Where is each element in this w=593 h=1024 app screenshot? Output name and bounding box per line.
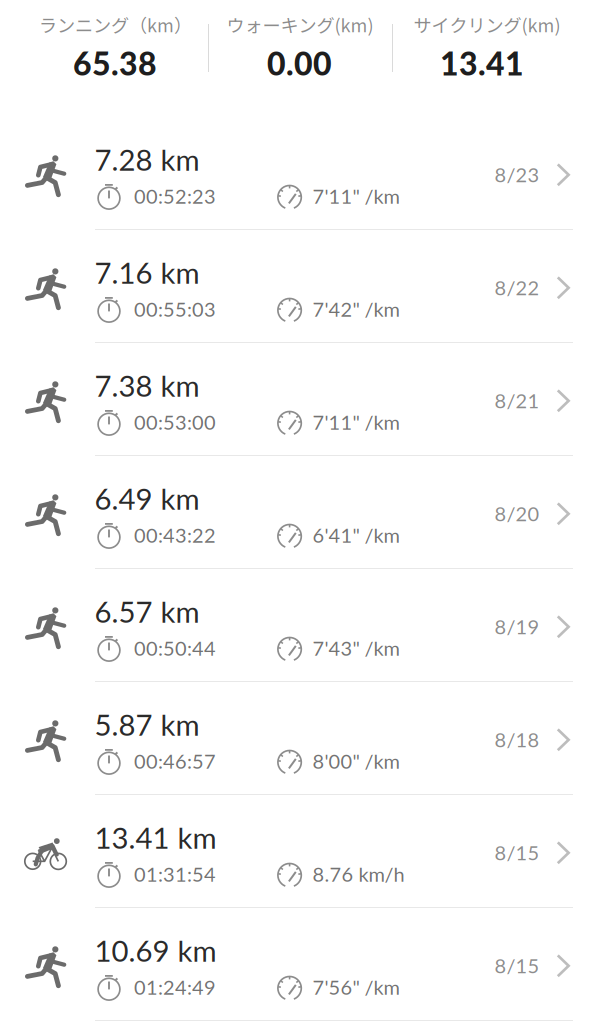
staticText: 7.16 km	[95, 255, 200, 290]
staticText: 8/18	[494, 727, 539, 751]
staticText: 6.57 km	[95, 594, 200, 629]
staticText: 8/15	[494, 953, 539, 977]
staticText: 00:52:23	[134, 184, 216, 208]
button[interactable]: 6.49 km	[0, 456, 593, 569]
staticText: 8'00" /km	[312, 749, 399, 773]
staticText: 8.76 km/h	[312, 862, 404, 886]
button[interactable]: 13.41 km	[0, 795, 593, 908]
staticText: 7'11" /km	[312, 410, 399, 434]
staticText: 6'41" /km	[312, 523, 399, 547]
staticText: 8/20	[494, 501, 539, 525]
button[interactable]: 7.38 km	[0, 343, 593, 456]
staticText: 7'56" /km	[312, 975, 399, 999]
button[interactable]: 7.16 km	[0, 230, 593, 343]
staticText: 8/23	[494, 162, 539, 186]
staticText: 7'43" /km	[312, 636, 399, 660]
button[interactable]: 7.28 km	[0, 117, 593, 230]
button[interactable]: 6.57 km	[0, 569, 593, 682]
staticText: 00:43:22	[134, 523, 216, 547]
staticText: 7'42" /km	[312, 297, 399, 321]
staticText: サイクリング(km)	[413, 11, 560, 37]
staticText: ランニング（km）	[39, 11, 192, 37]
staticText: 10.69 km	[95, 933, 217, 968]
staticText: 8/21	[494, 388, 539, 412]
button[interactable]: 10.69 km	[0, 908, 593, 1021]
staticText: 0.00	[267, 44, 332, 82]
staticText: 65.38	[73, 44, 157, 82]
button[interactable]: 5.87 km	[0, 682, 593, 795]
staticText: 6.49 km	[95, 481, 200, 516]
staticText: 13.41 km	[95, 820, 217, 855]
staticText: 13.41	[440, 44, 524, 82]
staticText: 7.38 km	[95, 368, 200, 403]
staticText: 8/19	[494, 614, 539, 638]
staticText: 00:55:03	[134, 297, 216, 321]
staticText: 01:31:54	[134, 862, 216, 886]
staticText: 00:53:00	[134, 410, 216, 434]
staticText: 8/22	[494, 275, 539, 299]
staticText: 00:50:44	[134, 636, 216, 660]
staticText: 7'11" /km	[312, 184, 399, 208]
staticText: 5.87 km	[95, 707, 200, 742]
staticText: 00:46:57	[134, 749, 216, 773]
staticText: 8/15	[494, 840, 539, 864]
staticText: 7.28 km	[95, 142, 200, 177]
staticText: ウォーキング(km)	[226, 11, 373, 37]
staticText: 01:24:49	[134, 975, 216, 999]
